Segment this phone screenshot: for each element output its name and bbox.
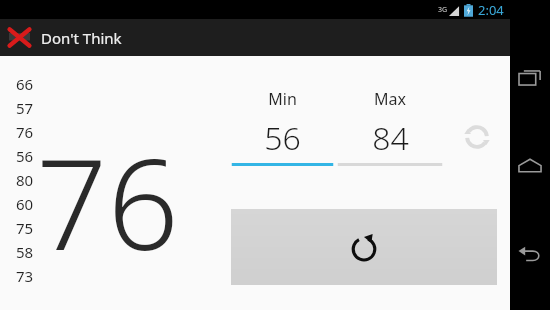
button[interactable]: Max — [338, 88, 442, 166]
staticText: 80 — [16, 170, 34, 190]
button[interactable]: Sync range — [457, 117, 497, 157]
staticText: Don't Think — [41, 28, 122, 48]
staticText: Max — [374, 88, 406, 110]
staticText: 3G — [438, 5, 448, 15]
button[interactable]: Back — [510, 234, 550, 274]
staticText: 66 — [16, 74, 34, 94]
staticText: 84 — [372, 116, 409, 160]
staticText: 73 — [16, 266, 34, 286]
staticText: 56 — [16, 146, 34, 166]
button[interactable]: Recent apps — [510, 58, 550, 98]
staticText: 75 — [16, 218, 34, 238]
staticText: Min — [268, 88, 297, 110]
staticText: 2:04 — [478, 1, 504, 19]
staticText: 60 — [16, 194, 34, 214]
button[interactable]: Min — [232, 88, 333, 166]
button[interactable]: Generate — [231, 209, 497, 285]
staticText: 58 — [16, 242, 34, 262]
staticText: 76 — [36, 116, 179, 286]
button[interactable]: Home — [510, 146, 550, 186]
staticText: 56 — [264, 116, 301, 160]
staticText: 76 — [16, 122, 34, 142]
staticText: 57 — [16, 98, 34, 118]
